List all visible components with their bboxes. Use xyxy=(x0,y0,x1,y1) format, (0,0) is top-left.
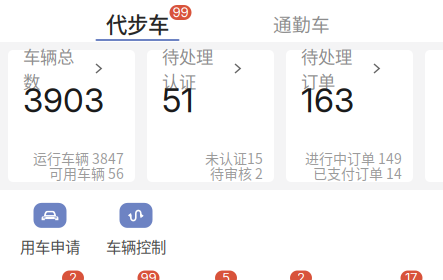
button[interactable]: 车辆总数 xyxy=(8,50,135,182)
staticText: 进行中订单 149 xyxy=(305,148,402,168)
staticText: 车辆总数 xyxy=(23,43,74,94)
button[interactable]: 待处理订单 xyxy=(286,50,413,182)
button[interactable]: 车辆控制 xyxy=(93,206,179,254)
staticText: 99 xyxy=(172,4,188,20)
button[interactable]: 代步车 xyxy=(73,0,203,42)
staticText: 17 xyxy=(405,270,418,280)
staticText: 5 xyxy=(222,270,230,280)
staticText: 99 xyxy=(140,270,156,280)
staticText: 代步车 xyxy=(106,8,169,39)
staticText: 未认证15 xyxy=(205,148,263,168)
staticText: 待审核 2 xyxy=(210,163,263,183)
staticText: 运行车辆 3847 xyxy=(33,148,124,168)
staticText: 用车申请 xyxy=(20,235,80,257)
button[interactable]: 通勤车 xyxy=(237,0,357,42)
staticText: 51 xyxy=(162,80,194,120)
staticText: 可用车辆 56 xyxy=(49,163,124,183)
staticText: 通勤车 xyxy=(273,10,330,37)
button[interactable]: 用车申请 xyxy=(7,206,93,254)
staticText: 163 xyxy=(301,80,354,120)
staticText: 车辆控制 xyxy=(106,235,166,257)
staticText: 2 xyxy=(297,270,305,280)
staticText: 2 xyxy=(69,270,77,280)
staticText: 待处理认证 xyxy=(162,43,213,94)
staticText: 待处理订单 xyxy=(301,43,352,94)
staticText: 3903 xyxy=(23,80,104,120)
staticText: 已支付订单 14 xyxy=(313,163,402,183)
button[interactable]: 待处理认证 xyxy=(147,50,274,182)
